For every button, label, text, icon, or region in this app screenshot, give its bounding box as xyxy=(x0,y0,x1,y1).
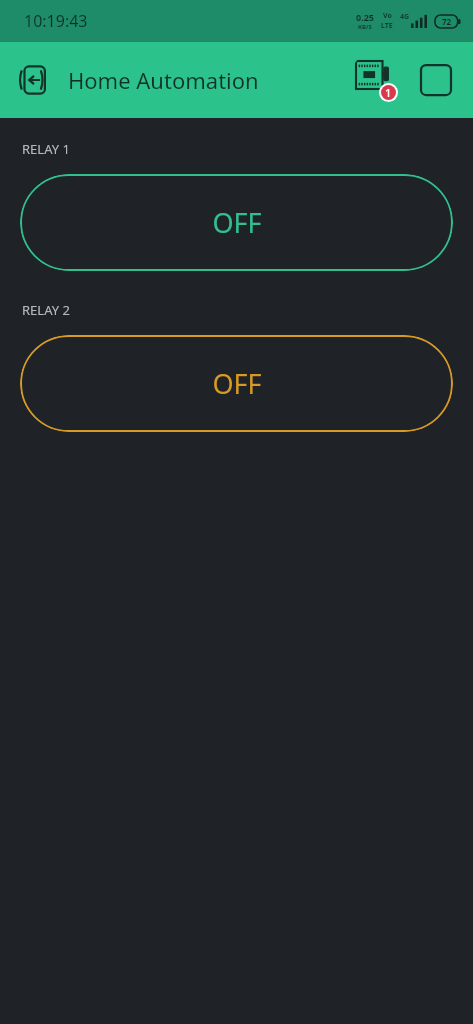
button[interactable]: Stop xyxy=(411,55,461,105)
staticText: Home Automation xyxy=(68,65,349,95)
staticText: LTE xyxy=(381,21,393,31)
button[interactable]: Devices, 1 connected xyxy=(349,52,405,108)
staticText: KB/S xyxy=(358,23,372,31)
button[interactable]: Log out xyxy=(8,54,60,106)
staticText: Vo xyxy=(383,11,392,21)
staticText: OFF xyxy=(212,204,262,241)
staticText: 0.25 xyxy=(356,11,374,23)
staticText: 10:19:43 xyxy=(24,10,88,32)
staticText: RELAY 2 xyxy=(22,301,70,319)
staticText: 72 xyxy=(442,16,452,27)
staticText: 4G xyxy=(400,12,410,22)
staticText: RELAY 1 xyxy=(22,140,70,158)
staticText: 1 xyxy=(385,85,392,100)
button[interactable]: OFF xyxy=(20,174,453,271)
button[interactable]: OFF xyxy=(20,335,453,432)
staticText: OFF xyxy=(212,365,262,402)
